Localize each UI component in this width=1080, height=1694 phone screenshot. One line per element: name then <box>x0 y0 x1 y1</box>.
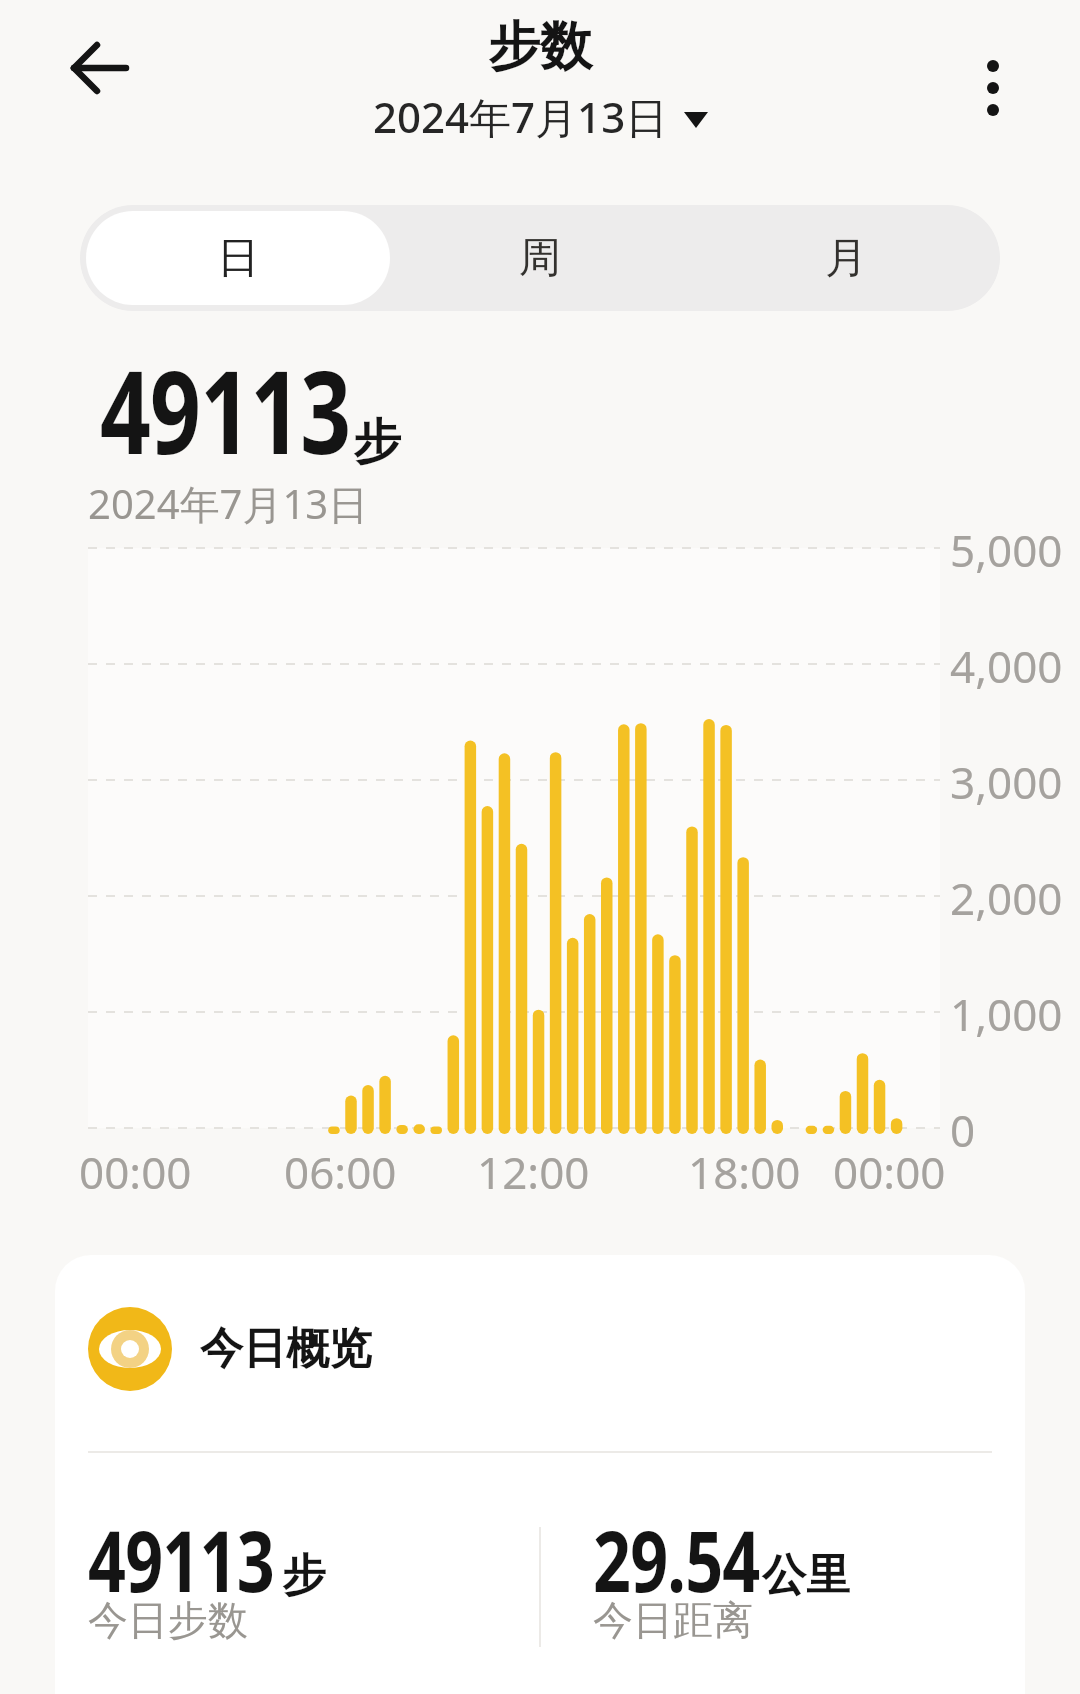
staticText: 18:00 <box>688 1142 801 1198</box>
staticText: 06:00 <box>284 1142 397 1198</box>
staticText: 周 <box>519 232 561 285</box>
staticText: 2024年7月13日 <box>373 88 668 145</box>
staticText: 00:00 <box>833 1142 946 1198</box>
staticText: 29.54 <box>593 1502 760 1616</box>
staticText: 4,000 <box>950 636 1063 692</box>
button[interactable]: 月 <box>692 205 1000 311</box>
staticText: 00:00 <box>79 1142 192 1198</box>
staticText: 2,000 <box>950 868 1063 924</box>
staticText: 1,000 <box>950 984 1063 1040</box>
staticText: 3,000 <box>950 752 1063 808</box>
staticText: 今日距离 <box>593 1595 753 1645</box>
staticText: 步 <box>282 1548 326 1603</box>
staticText: 0 <box>950 1100 976 1156</box>
staticText: 公里 <box>762 1548 850 1603</box>
staticText: 步 <box>353 412 401 472</box>
staticText: 日 <box>217 232 259 285</box>
button[interactable]: 周 <box>388 205 692 311</box>
staticText: 月 <box>825 232 867 285</box>
staticText: 步数 <box>488 14 592 80</box>
button[interactable]: 2024年7月13日 <box>373 88 708 145</box>
button[interactable] <box>962 46 1024 126</box>
staticText: 2024年7月13日 <box>88 476 369 531</box>
button[interactable] <box>58 40 144 96</box>
staticText: 今日概览 <box>200 1322 372 1376</box>
staticText: 5,000 <box>950 520 1063 576</box>
staticText: 12:00 <box>477 1142 590 1198</box>
staticText: 49113 <box>88 1502 274 1616</box>
button[interactable]: 日 <box>86 211 390 305</box>
staticText: 今日步数 <box>88 1595 248 1645</box>
staticText: 49113 <box>100 332 351 487</box>
button[interactable]: 今日概览 <box>88 1307 372 1391</box>
